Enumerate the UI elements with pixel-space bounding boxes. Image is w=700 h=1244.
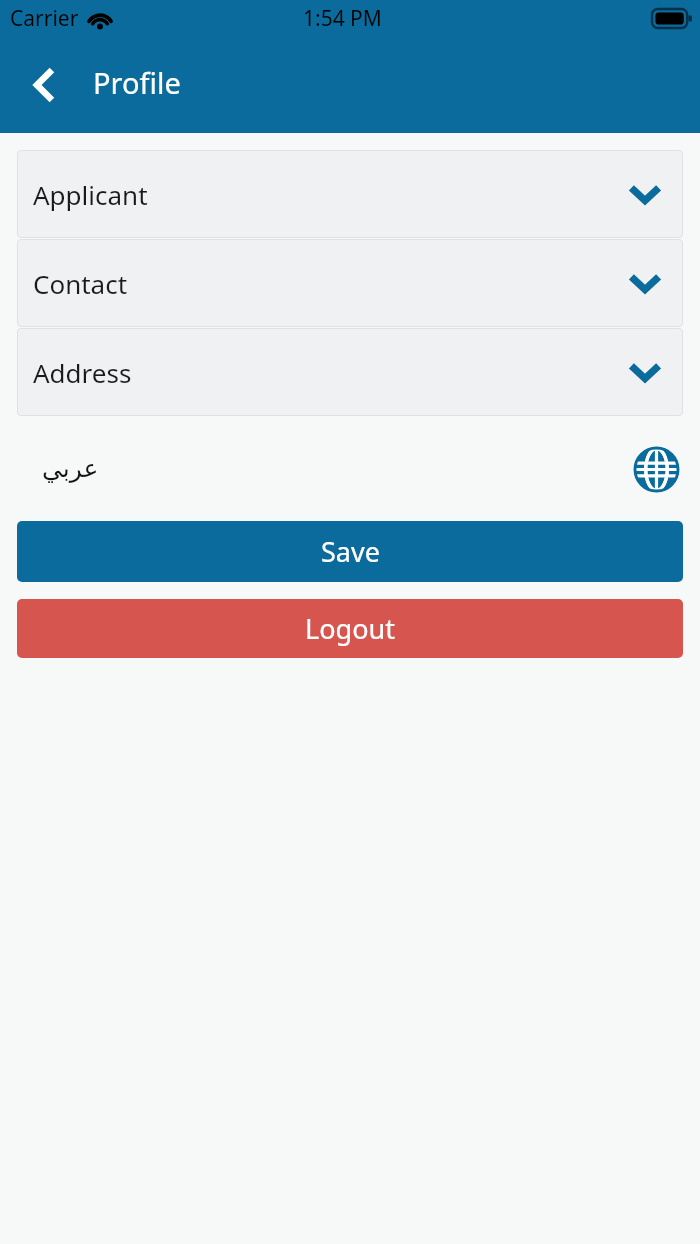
staticText: Save [321, 533, 380, 570]
staticText: عربي [42, 454, 99, 483]
button[interactable]: Back [18, 59, 70, 111]
staticText: 1:54 PM [303, 4, 382, 33]
button[interactable]: Contact [17, 239, 683, 327]
button[interactable]: Address [17, 328, 683, 416]
staticText: Logout [305, 610, 395, 647]
staticText: Contact [33, 266, 128, 301]
staticText: Address [33, 355, 132, 390]
staticText: Carrier [10, 4, 79, 33]
button[interactable]: Applicant [17, 150, 683, 238]
staticText: Applicant [33, 177, 148, 212]
button[interactable]: Save [17, 521, 683, 582]
staticText: Profile [93, 63, 181, 102]
button[interactable]: Change language [630, 443, 682, 495]
button[interactable]: Logout [17, 599, 683, 658]
button[interactable]: عربي [18, 448, 111, 489]
